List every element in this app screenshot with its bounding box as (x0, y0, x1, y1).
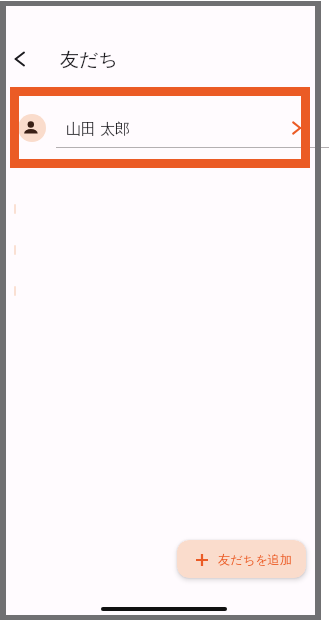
staticText: 山田 太郎 (66, 118, 130, 138)
staticText: 友だち (60, 48, 118, 72)
button[interactable]: Back (1, 40, 39, 78)
staticText: 友だちを追加 (218, 552, 292, 567)
button[interactable]: 山田 太郎 (6, 101, 315, 155)
button[interactable]: 友だちを追加 (177, 540, 306, 578)
